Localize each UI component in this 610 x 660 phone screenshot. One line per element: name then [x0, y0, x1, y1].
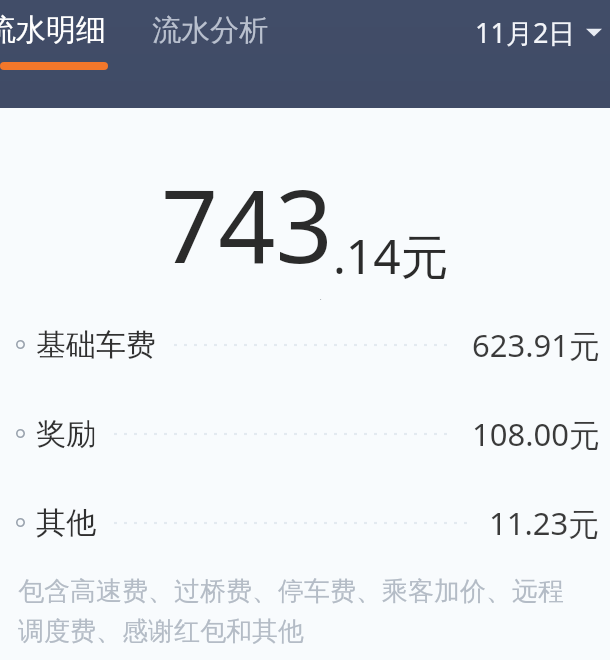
staticText: 11月2日 [475, 14, 576, 51]
button[interactable]: 流水分析 [152, 0, 292, 72]
button[interactable]: 11月2日 [469, 6, 608, 58]
button[interactable]: 流水明细 [0, 0, 108, 72]
other: Select date [586, 27, 602, 37]
staticText: 其他 [36, 504, 96, 542]
button[interactable]: 其他 [0, 478, 610, 567]
staticText: 流水明细 [0, 11, 106, 49]
button[interactable]: 奖励 [0, 389, 610, 478]
staticText: 流水分析 [152, 12, 268, 49]
staticText: 包含高速费、过桥费、停车费、乘客加价、远程 调度费、感谢红包和其他 [18, 575, 564, 648]
staticText: 108.00元 [472, 413, 600, 455]
staticText: 11.23元 [489, 502, 600, 544]
button[interactable]: 基础车费 [0, 300, 610, 389]
staticText: 623.91元 [472, 324, 600, 366]
staticText: 奖励 [36, 415, 96, 453]
staticText: 743 [161, 156, 333, 292]
staticText: 基础车费 [36, 326, 156, 364]
staticText: .14元 [333, 223, 449, 289]
staticText: 今日流水 [249, 296, 361, 300]
